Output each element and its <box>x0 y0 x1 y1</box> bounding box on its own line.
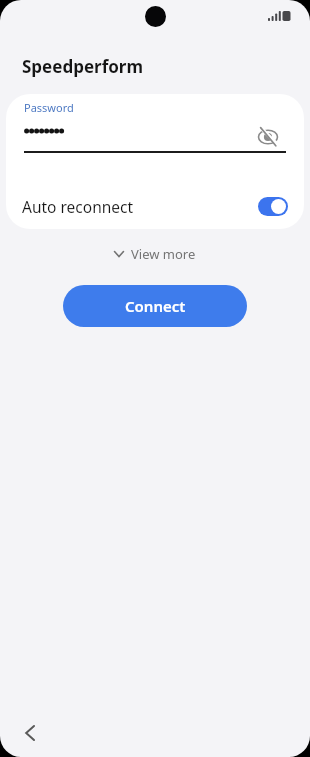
staticText: Password <box>24 100 74 115</box>
button[interactable]: View more <box>114 245 196 263</box>
button[interactable]: Auto reconnect <box>22 191 288 221</box>
staticText: View more <box>131 245 196 263</box>
staticText: Connect <box>125 296 186 316</box>
staticText: Auto reconnect <box>22 196 134 217</box>
button[interactable] <box>14 717 46 749</box>
staticText: Speedperform <box>22 55 144 78</box>
button[interactable] <box>6 117 304 145</box>
button[interactable]: Connect <box>63 285 247 327</box>
